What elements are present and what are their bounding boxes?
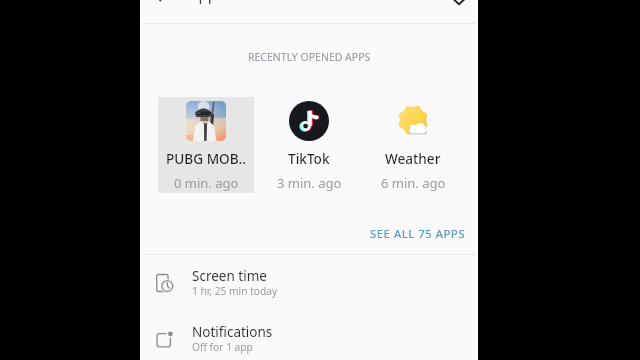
button[interactable]: Notifications <box>140 314 478 360</box>
button[interactable]: TikTok <box>261 97 357 193</box>
staticText: 0 min. ago <box>174 174 239 192</box>
other: Navigate up <box>152 0 172 6</box>
staticText: 6 min. ago <box>381 174 446 192</box>
other: Collapse <box>449 0 469 11</box>
staticText: PUBG MOB.. <box>166 149 246 168</box>
button[interactable]: Apps and notifications <box>140 0 478 23</box>
button[interactable] <box>158 97 254 193</box>
staticText: 3 min. ago <box>277 174 342 192</box>
staticText: Weather <box>385 149 441 168</box>
button[interactable]: Screen time <box>140 258 478 314</box>
button[interactable]: PUBG MOB.. <box>158 97 254 193</box>
staticText: Notifications <box>192 323 273 341</box>
button[interactable]: Weather <box>365 97 461 193</box>
staticText: TikTok <box>288 149 330 168</box>
staticText: 1 hr, 25 min today <box>192 284 278 298</box>
staticText: Apps and notifications <box>189 0 347 4</box>
button[interactable]: SEE ALL 75 APPS <box>362 222 473 246</box>
staticText: RECENTLY OPENED APPS <box>248 50 371 64</box>
staticText: Screen time <box>192 267 267 285</box>
staticText: Off for 1 app <box>192 340 253 354</box>
staticText: SEE ALL 75 APPS <box>370 226 465 242</box>
